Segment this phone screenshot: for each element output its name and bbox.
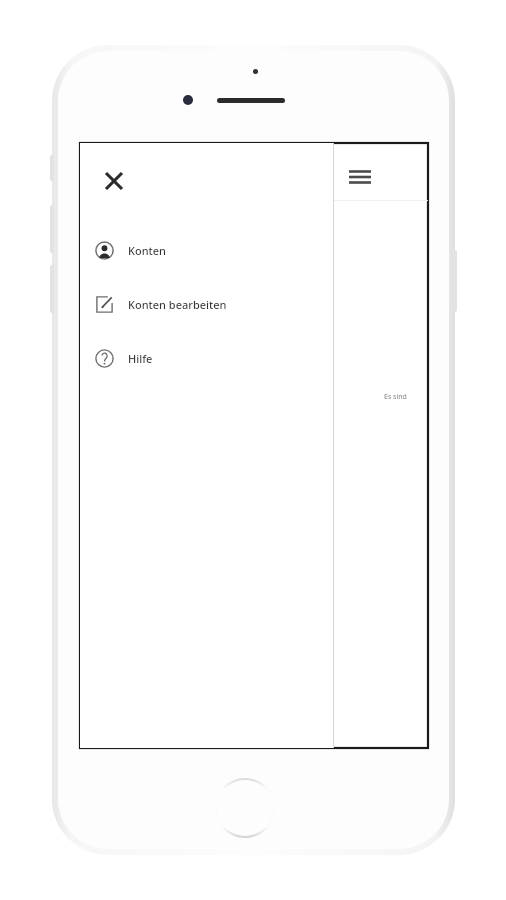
button[interactable]: Schließen — [90, 157, 138, 205]
button[interactable]: Home — [215, 778, 275, 838]
button[interactable]: Konten — [80, 233, 333, 267]
button[interactable]: Konten bearbeiten — [80, 287, 333, 321]
button[interactable]: Menü — [340, 157, 380, 197]
staticText: Hilfe — [128, 351, 153, 366]
button[interactable]: Hilfe — [80, 341, 333, 375]
staticText: Konten bearbeiten — [128, 297, 227, 312]
staticText: Konten — [128, 243, 166, 258]
staticText: Es sind — [384, 392, 407, 402]
